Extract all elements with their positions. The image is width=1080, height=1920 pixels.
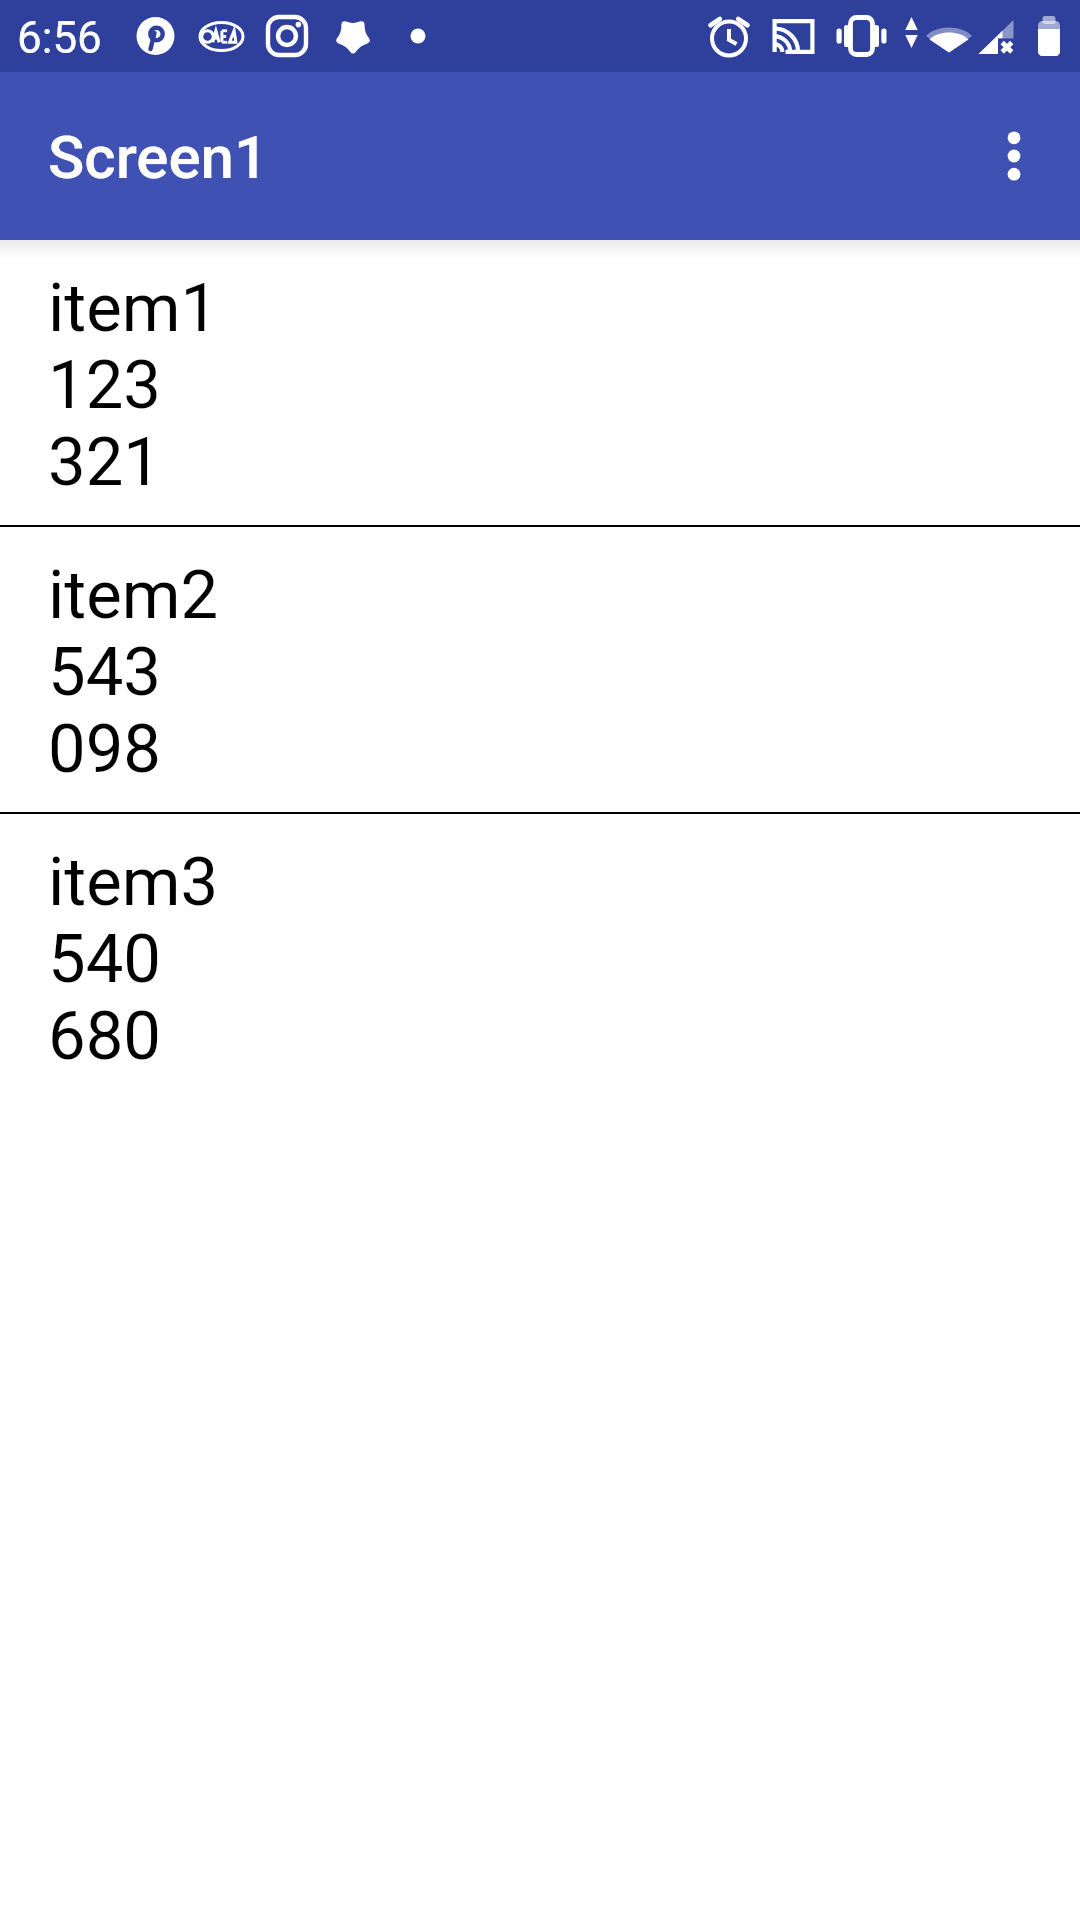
- staticText: 6:56: [17, 12, 102, 64]
- button[interactable]: item2 543 098: [0, 527, 1080, 812]
- button[interactable]: More options: [966, 108, 1062, 204]
- staticText: item1 123 321: [48, 270, 219, 501]
- staticText: Screen1: [48, 122, 269, 192]
- button[interactable]: item3 540 680: [0, 814, 1080, 1099]
- staticText: item3 540 680: [48, 844, 219, 1075]
- staticText: item2 543 098: [48, 557, 219, 788]
- button[interactable]: item1 123 321: [0, 240, 1080, 525]
